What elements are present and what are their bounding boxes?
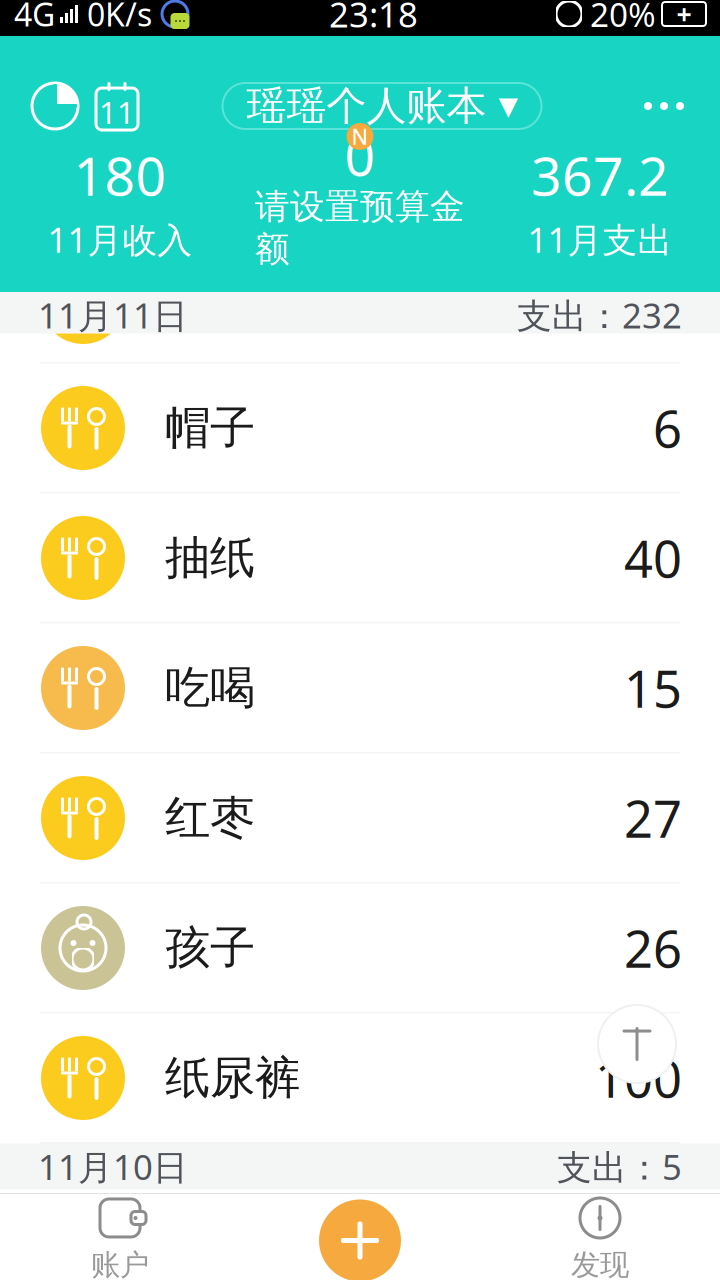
staticText: 瑶瑶个人账本 bbox=[246, 81, 486, 130]
staticText: 请设置预算金额 bbox=[255, 185, 465, 271]
button[interactable]: Charts bbox=[24, 69, 86, 143]
staticText: 11月10日 bbox=[38, 1143, 188, 1189]
staticText: 支出：5 bbox=[557, 1143, 682, 1189]
staticText: 11月支出 bbox=[527, 216, 672, 262]
staticText: 27 bbox=[624, 784, 682, 852]
staticText: 帽子 bbox=[165, 400, 255, 456]
staticText: 26 bbox=[624, 914, 682, 982]
button[interactable]: 红枣 bbox=[0, 753, 720, 883]
staticText: 367.2 bbox=[531, 140, 669, 210]
staticText: 0 bbox=[344, 120, 375, 191]
staticText: 40 bbox=[624, 524, 682, 592]
button[interactable]: Calendar bbox=[86, 69, 148, 143]
staticText: 11月11日 bbox=[38, 292, 188, 338]
staticText: 100 bbox=[595, 1044, 682, 1112]
button[interactable]: Scroll to top bbox=[592, 999, 682, 1089]
staticText: 吃喝 bbox=[165, 660, 255, 716]
staticText: 6 bbox=[653, 394, 682, 462]
staticText: 支出：232 bbox=[517, 292, 682, 338]
staticText: ▼ bbox=[498, 92, 517, 120]
staticText: 红枣 bbox=[165, 790, 255, 846]
button[interactable]: 180 bbox=[0, 151, 240, 251]
staticText: 抽纸 bbox=[165, 530, 255, 586]
button[interactable]: 发现 bbox=[480, 1193, 720, 1280]
button[interactable]: 0 bbox=[240, 151, 480, 251]
staticText: 4G bbox=[14, 0, 55, 35]
staticText: N bbox=[351, 122, 368, 151]
staticText: 20% bbox=[590, 0, 656, 36]
button[interactable]: 抽纸 bbox=[0, 493, 720, 623]
button[interactable]: 纸尿裤 bbox=[0, 1013, 720, 1143]
staticText: 11 bbox=[99, 92, 135, 132]
button[interactable]: More bbox=[616, 69, 712, 143]
button[interactable]: 瑶瑶个人账本 bbox=[222, 83, 541, 129]
staticText: 180 bbox=[73, 140, 166, 210]
staticText: 23:18 bbox=[329, 0, 418, 37]
button[interactable]: 账户 bbox=[0, 1193, 240, 1280]
button[interactable]: 吃喝 bbox=[0, 623, 720, 753]
staticText: 15 bbox=[624, 654, 682, 722]
staticText: 发现 bbox=[571, 1247, 629, 1280]
staticText: 11月收入 bbox=[47, 216, 192, 262]
button[interactable]: Add record bbox=[305, 1193, 415, 1280]
button[interactable]: 367.2 bbox=[480, 151, 720, 251]
staticText: + bbox=[676, 0, 691, 32]
button[interactable]: 孩子 bbox=[0, 883, 720, 1013]
staticText: 孩子 bbox=[165, 920, 255, 976]
staticText: 纸尿裤 bbox=[165, 1050, 300, 1106]
staticText: 账户 bbox=[91, 1247, 149, 1280]
staticText: 0K/s bbox=[87, 0, 152, 35]
button[interactable]: 帽子 bbox=[0, 363, 720, 493]
